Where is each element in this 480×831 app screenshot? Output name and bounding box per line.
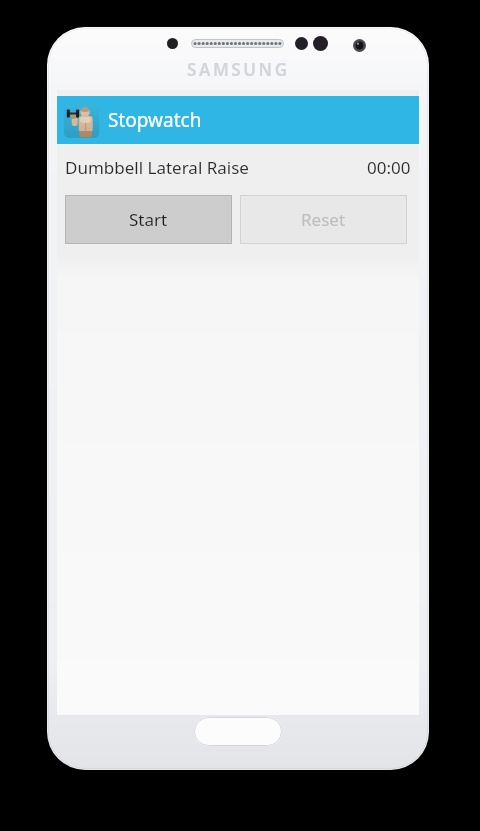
staticText: Stopwatch bbox=[108, 107, 202, 133]
button[interactable]: Reset bbox=[240, 195, 407, 244]
staticText: 00:00 bbox=[367, 156, 411, 179]
staticText: Start bbox=[129, 208, 168, 231]
staticText: Dumbbell Lateral Raise bbox=[65, 156, 249, 179]
staticText: Reset bbox=[301, 208, 346, 231]
button[interactable]: Start bbox=[65, 195, 232, 244]
button[interactable]: Home bbox=[194, 717, 282, 746]
staticText: SAMSUNG bbox=[187, 58, 290, 81]
button[interactable]: Stopwatch bbox=[57, 96, 419, 144]
